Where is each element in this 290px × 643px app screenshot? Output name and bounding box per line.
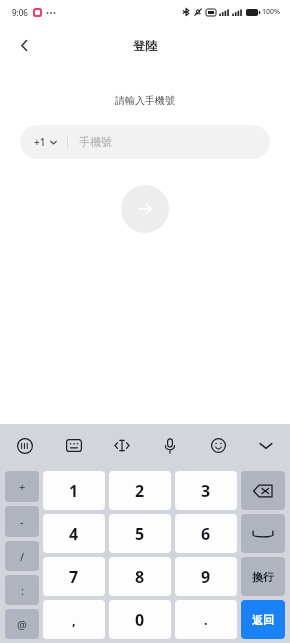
button[interactable]: Keyboard — [49, 424, 98, 467]
button[interactable]: Backspace — [241, 471, 285, 510]
staticText: , — [72, 611, 76, 629]
button[interactable]: 9 — [175, 557, 237, 596]
button[interactable]: Next — [121, 185, 169, 233]
button[interactable]: Emoji — [194, 424, 242, 467]
staticText: 9:06 — [12, 7, 28, 18]
staticText: - — [20, 514, 24, 529]
button[interactable]: / — [5, 541, 39, 571]
staticText: 7 — [69, 566, 79, 588]
staticText: / — [20, 549, 25, 564]
staticText: 9 — [201, 566, 211, 588]
staticText: . — [204, 611, 208, 629]
staticText: 0 — [135, 609, 145, 631]
button[interactable]: 8 — [109, 557, 171, 596]
staticText: 100% — [262, 7, 280, 17]
staticText: 手機號 — [79, 135, 112, 149]
button[interactable]: 3 — [175, 471, 237, 510]
staticText: 登陸 — [133, 38, 157, 53]
button[interactable]: . — [175, 600, 237, 639]
button[interactable]: 7 — [43, 557, 105, 596]
button[interactable]: 0 — [109, 600, 171, 639]
button[interactable]: 6 — [175, 514, 237, 553]
button[interactable]: Back — [6, 27, 42, 63]
button[interactable]: Text cursor — [98, 424, 146, 467]
staticText: + — [19, 479, 26, 494]
button[interactable]: Space — [241, 514, 285, 553]
staticText: 8 — [135, 566, 145, 588]
button[interactable]: - — [5, 506, 39, 537]
button[interactable]: Language — [0, 424, 49, 467]
button[interactable]: 換行 — [241, 557, 285, 596]
staticText: 換行 — [252, 570, 274, 584]
button[interactable]: 返回 — [241, 600, 285, 639]
staticText: 請輸入手機號 — [0, 94, 290, 107]
staticText: 3 — [201, 480, 211, 502]
button[interactable]: , — [43, 600, 105, 639]
staticText: 5 — [135, 523, 145, 545]
staticText: 4 — [69, 523, 79, 545]
button[interactable]: 4 — [43, 514, 105, 553]
staticText: 2 — [135, 480, 145, 502]
staticText: 1 — [69, 480, 79, 502]
button[interactable]: 1 — [43, 471, 105, 510]
button[interactable]: Voice input — [146, 424, 194, 467]
button[interactable]: + — [5, 471, 39, 502]
staticText: +1 — [34, 135, 46, 149]
staticText: 6 — [201, 523, 211, 545]
button[interactable]: 2 — [109, 471, 171, 510]
button[interactable]: @ — [5, 609, 39, 639]
button[interactable]: Hide keyboard — [242, 424, 290, 467]
button[interactable]: +1 — [20, 125, 270, 159]
staticText: 返回 — [252, 613, 274, 627]
staticText: : — [21, 583, 24, 598]
button[interactable]: : — [5, 575, 39, 605]
staticText: @ — [17, 617, 27, 632]
button[interactable]: 5 — [109, 514, 171, 553]
